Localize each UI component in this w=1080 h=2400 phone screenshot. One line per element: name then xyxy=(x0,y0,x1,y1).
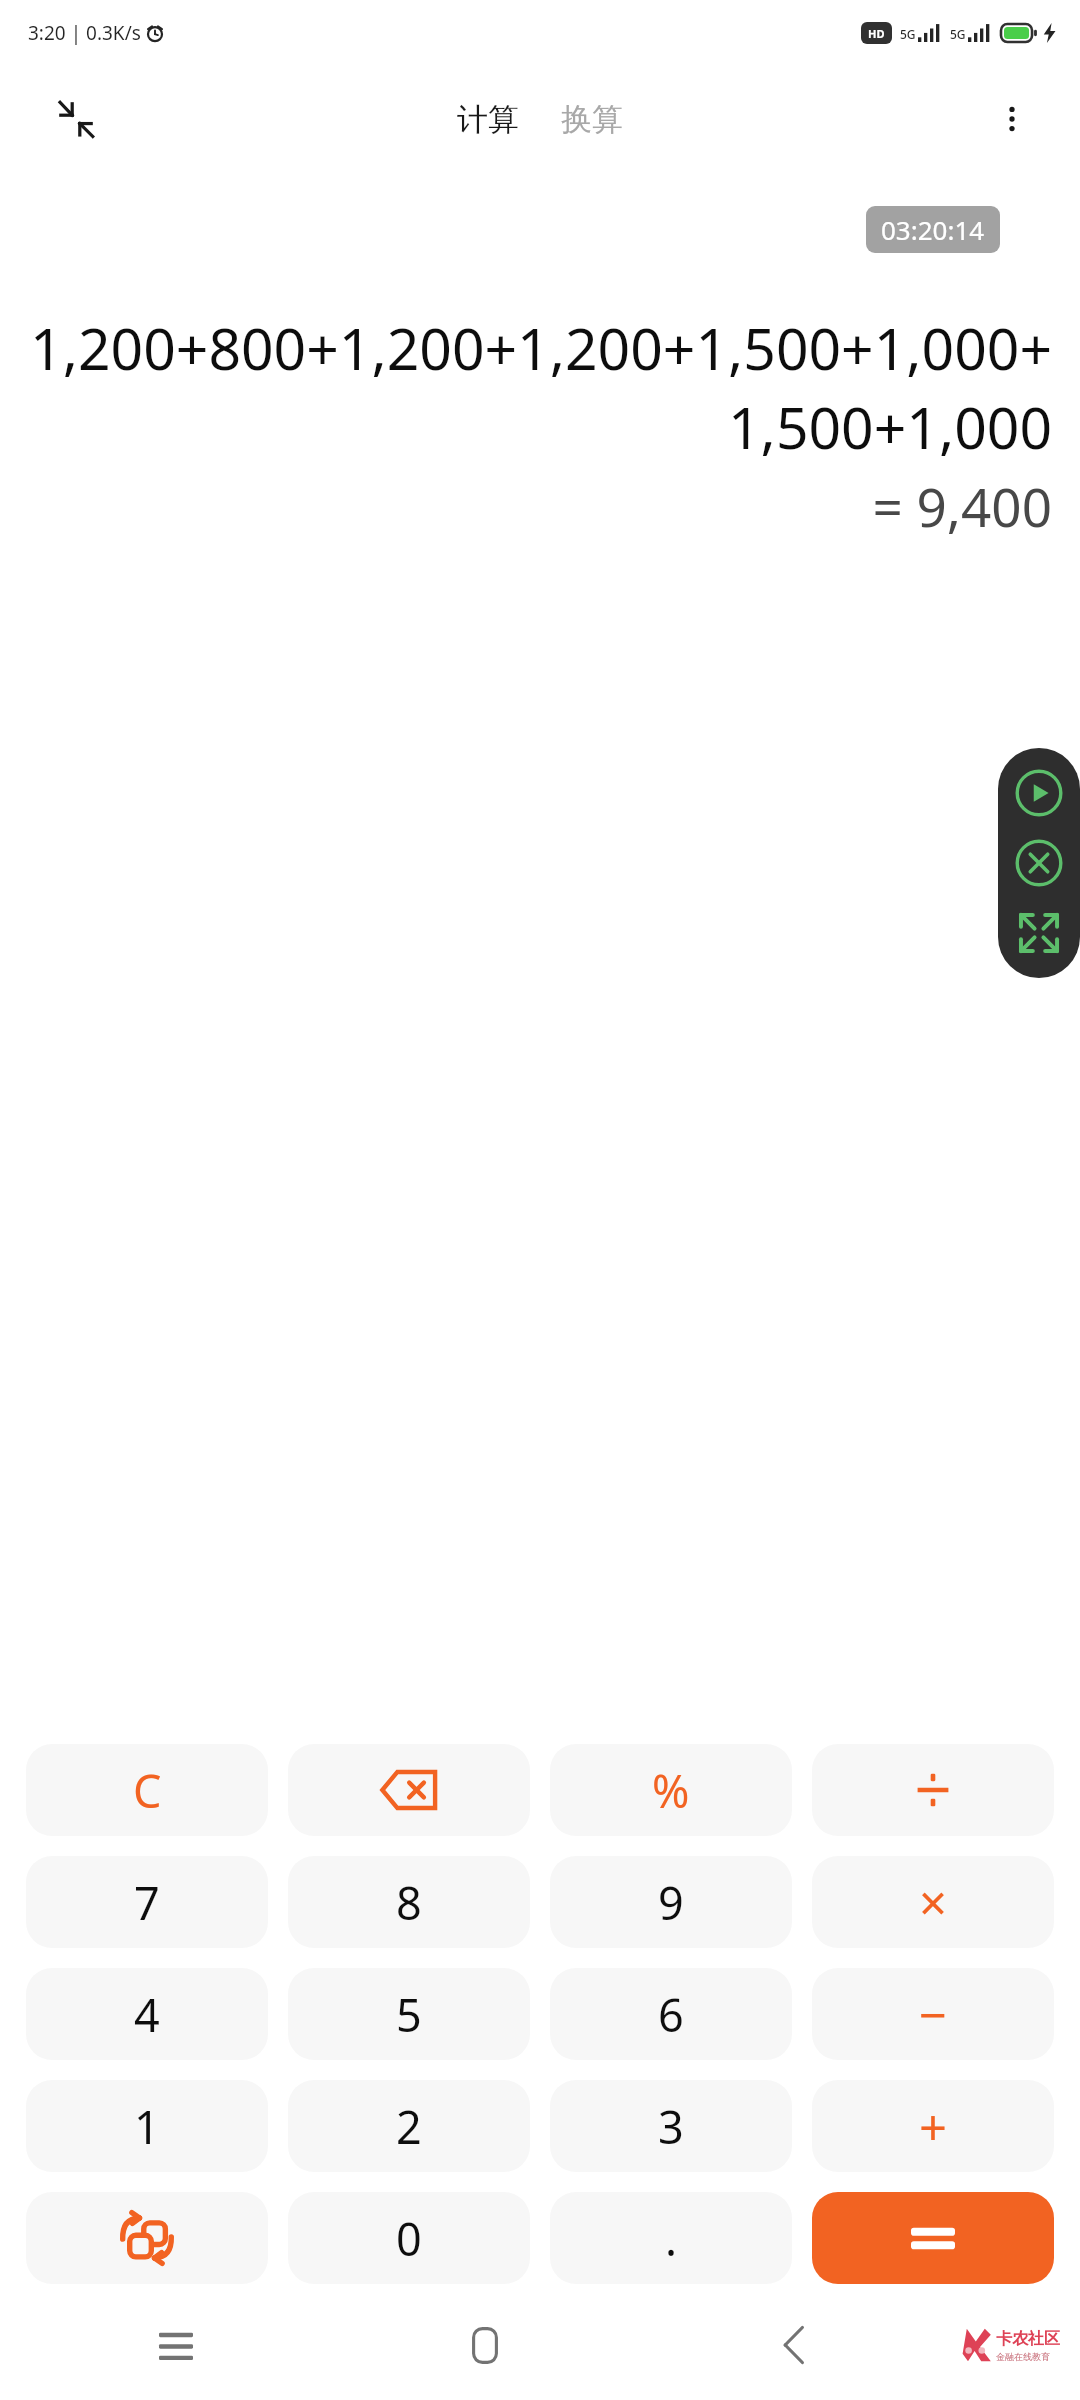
button[interactable]: 7 xyxy=(26,1856,268,1948)
button[interactable]: Home xyxy=(449,2309,521,2381)
staticText: 卡农社区 xyxy=(996,2329,1060,2349)
button[interactable]: 3 xyxy=(550,2080,792,2172)
staticText: 0 xyxy=(396,2208,422,2269)
button[interactable]: Multiply xyxy=(812,1856,1054,1948)
button[interactable]: 8 xyxy=(288,1856,530,1948)
staticText: 9 xyxy=(658,1872,684,1933)
staticText: 7 xyxy=(134,1872,160,1933)
staticText: 5G xyxy=(950,26,966,42)
button[interactable]: More options xyxy=(982,89,1042,149)
staticText: − xyxy=(919,1981,948,2048)
button[interactable]: 4 xyxy=(26,1968,268,2060)
button[interactable]: Equals xyxy=(812,2192,1054,2284)
button[interactable]: Recents xyxy=(140,2309,212,2381)
staticText: 5 xyxy=(396,1984,422,2045)
staticText: 8 xyxy=(396,1872,422,1933)
staticText: 03:20:14 xyxy=(881,212,985,247)
button[interactable]: Convert xyxy=(26,2192,268,2284)
staticText: C xyxy=(133,1760,162,1821)
button[interactable]: 6 xyxy=(550,1968,792,2060)
staticText: 1 xyxy=(134,2096,160,2157)
staticText: + xyxy=(919,2093,948,2160)
button[interactable]: 0 xyxy=(288,2192,530,2284)
button[interactable]: Backspace xyxy=(288,1744,530,1836)
staticText: 4 xyxy=(134,1984,160,2045)
button[interactable]: Subtract xyxy=(812,1968,1054,2060)
staticText: HD xyxy=(868,26,885,41)
button[interactable]: 9 xyxy=(550,1856,792,1948)
button[interactable]: Collapse xyxy=(46,89,106,149)
button[interactable]: Expand xyxy=(1012,906,1066,960)
button[interactable]: 1 xyxy=(26,2080,268,2172)
button[interactable]: Back xyxy=(758,2309,830,2381)
button[interactable]: 2 xyxy=(288,2080,530,2172)
button[interactable]: Divide xyxy=(812,1744,1054,1836)
staticText: 3 xyxy=(658,2096,684,2157)
button[interactable]: . xyxy=(550,2192,792,2284)
staticText: 6 xyxy=(658,1984,684,2045)
staticText: 1,200+800+1,200+1,200+1,500+1,000+1,500+… xyxy=(28,309,1052,466)
staticText: 换算 xyxy=(561,100,623,139)
button[interactable]: Stop recording xyxy=(1012,836,1066,890)
button[interactable]: Add xyxy=(812,2080,1054,2172)
button[interactable]: Record xyxy=(1012,766,1066,820)
staticText: . xyxy=(665,2208,678,2269)
staticText: × xyxy=(919,1869,948,1936)
staticText: 计算 xyxy=(457,100,519,139)
button[interactable]: 计算 xyxy=(447,92,529,147)
staticText: = 9,400 xyxy=(28,470,1052,542)
button[interactable]: Percent xyxy=(550,1744,792,1836)
staticText: % xyxy=(652,1760,690,1821)
button[interactable]: Clear xyxy=(26,1744,268,1836)
button[interactable]: 5 xyxy=(288,1968,530,2060)
staticText: 金融在线教育 xyxy=(996,2351,1050,2362)
staticText: 3:20 | 0.3K/s xyxy=(28,20,141,46)
button[interactable]: 换算 xyxy=(551,92,633,147)
staticText: 5G xyxy=(900,26,916,42)
button[interactable]: 03:20:14 xyxy=(866,206,1000,253)
staticText: 2 xyxy=(396,2096,422,2157)
